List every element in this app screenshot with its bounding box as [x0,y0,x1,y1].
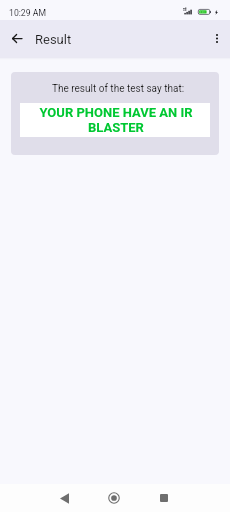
button[interactable]: Back [50,484,78,512]
button[interactable]: Back [0,20,33,57]
button[interactable]: Recent apps [150,484,178,512]
staticText: YOUR PHONE HAVE AN IR BLASTER [21,105,211,135]
staticText: 10:29 AM [9,8,47,18]
staticText: The result of the test say that: [52,83,185,95]
button[interactable]: Home [100,484,128,512]
staticText: Result [35,32,72,47]
button[interactable]: More options [204,20,230,57]
